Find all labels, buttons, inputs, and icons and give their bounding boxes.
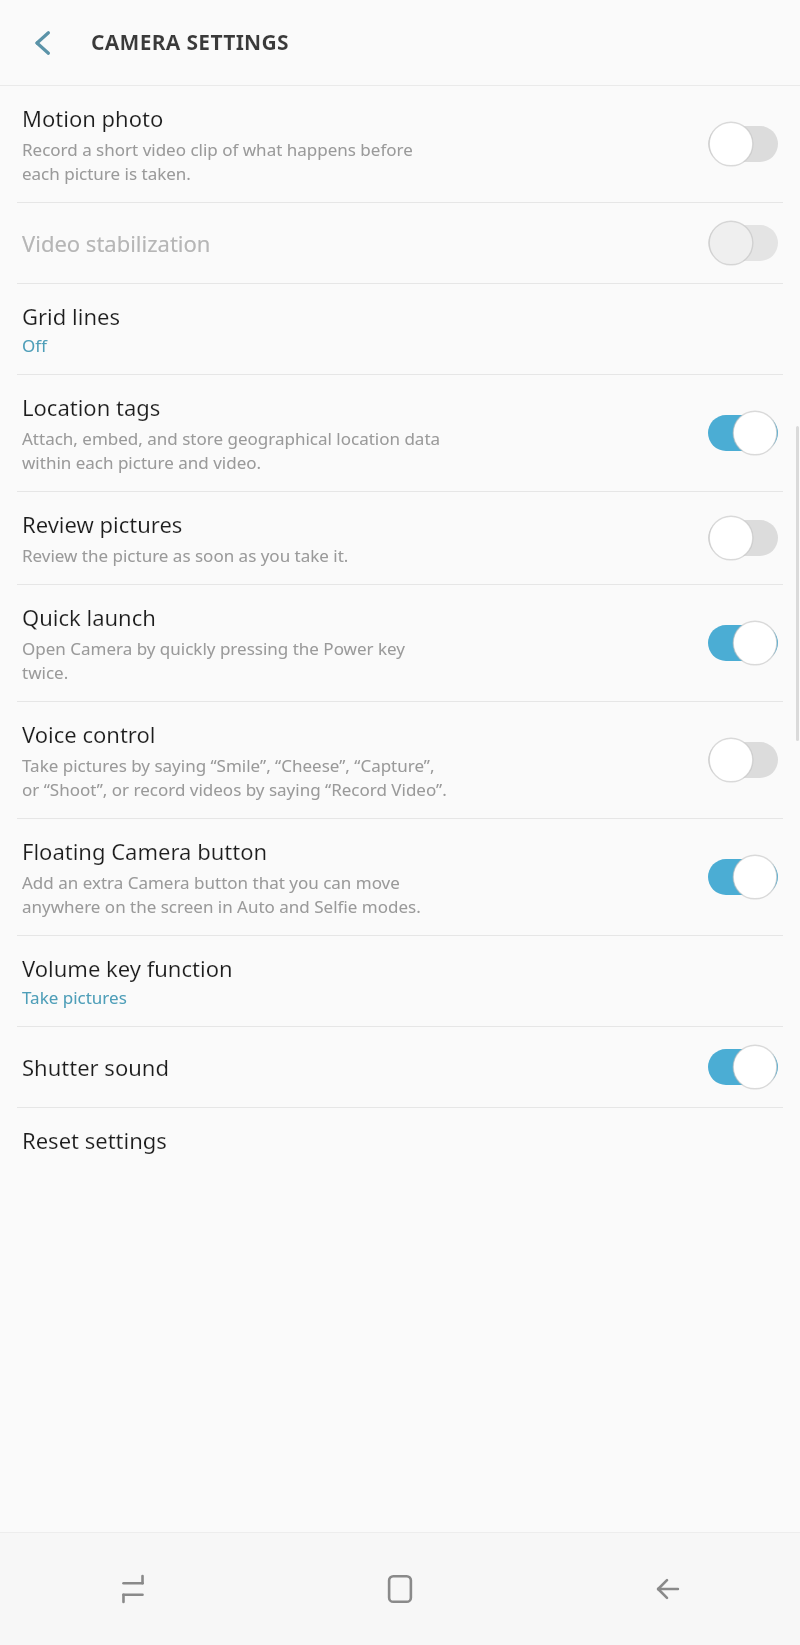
staticText: Quick launch [22,602,156,632]
button[interactable]: Floating Camera button [0,819,800,935]
staticText: CAMERA SETTINGS [91,28,289,57]
button[interactable]: Toggle [708,121,778,167]
button[interactable]: Toggle [708,410,778,456]
button[interactable]: Location tags [0,375,800,491]
button[interactable]: Video stabilization [0,203,800,283]
button[interactable]: Back [0,0,85,85]
button[interactable]: Toggle [708,1044,778,1090]
button[interactable]: Reset settings [0,1108,800,1172]
staticText: Grid lines [22,301,120,331]
button[interactable]: Toggle [708,515,778,561]
staticText: Floating Camera button [22,836,268,866]
button[interactable]: Back [533,1533,800,1645]
staticText: Take pictures [22,986,127,1009]
staticText: Voice control [22,719,156,749]
button[interactable]: Toggle [708,854,778,900]
staticText: Shutter sound [22,1052,169,1082]
staticText: Record a short video clip of what happen… [22,138,413,185]
button[interactable]: Voice control [0,702,800,818]
staticText: Open Camera by quickly pressing the Powe… [22,637,405,684]
staticText: Reset settings [22,1125,167,1155]
button[interactable]: Volume key function [0,936,800,1026]
button[interactable]: Review pictures [0,492,800,584]
button[interactable]: Shutter sound [0,1027,800,1107]
staticText: Volume key function [22,953,233,983]
button[interactable]: Quick launch [0,585,800,701]
button[interactable]: Recents [0,1533,266,1645]
staticText: Attach, embed, and store geographical lo… [22,427,441,474]
staticText: Add an extra Camera button that you can … [22,871,421,918]
staticText: Motion photo [22,103,164,133]
button[interactable]: Toggle [708,220,778,266]
staticText: Review pictures [22,509,183,539]
button[interactable]: Toggle [708,737,778,783]
staticText: Video stabilization [22,228,211,258]
staticText: Off [22,334,47,357]
button[interactable]: Toggle [708,620,778,666]
button[interactable]: Home [266,1533,533,1645]
button[interactable]: Motion photo [0,86,800,202]
staticText: Review the picture as soon as you take i… [22,544,349,567]
button[interactable]: Grid lines [0,284,800,374]
staticText: Take pictures by saying “Smile”, “Cheese… [22,754,447,801]
staticText: Location tags [22,392,161,422]
